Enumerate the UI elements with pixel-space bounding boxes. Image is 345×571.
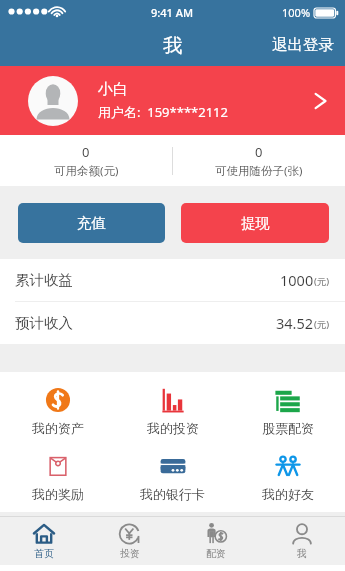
button[interactable]: 股票配资 bbox=[230, 386, 345, 436]
staticText: 我的资产 bbox=[32, 420, 84, 436]
button[interactable]: 预计收入 bbox=[0, 302, 345, 344]
staticText: 配资 bbox=[206, 547, 226, 560]
staticText: 我 bbox=[297, 547, 307, 560]
staticText: 股票配资 bbox=[262, 420, 314, 436]
button[interactable]: 累计收益 bbox=[0, 259, 345, 301]
button[interactable]: 我的资产 bbox=[0, 386, 115, 436]
staticText: 预计收入 bbox=[15, 314, 73, 332]
button[interactable]: 小白 bbox=[0, 66, 345, 135]
staticText: 我的银行卡 bbox=[140, 486, 205, 502]
staticText: 用户名: 159****2112 bbox=[98, 103, 228, 121]
staticText: 首页 bbox=[34, 547, 54, 560]
staticText: 小白 bbox=[98, 80, 128, 99]
button[interactable]: 提现 bbox=[181, 203, 329, 243]
staticText: 我的好友 bbox=[262, 486, 314, 502]
staticText: (元) bbox=[314, 275, 330, 288]
other: Account details bbox=[309, 90, 331, 112]
button[interactable]: 退出登录 bbox=[261, 27, 345, 63]
staticText: 提现 bbox=[241, 214, 270, 232]
staticText: 投资 bbox=[120, 547, 140, 560]
button[interactable]: 我的好友 bbox=[230, 452, 345, 502]
staticText: 0 bbox=[82, 143, 90, 161]
staticText: 可用余额(元) bbox=[54, 163, 119, 179]
staticText: 充值 bbox=[77, 214, 106, 232]
button[interactable]: 我的银行卡 bbox=[115, 452, 230, 502]
staticText: 100% bbox=[282, 5, 311, 20]
staticText: 累计收益 bbox=[15, 271, 73, 289]
staticText: 1000 bbox=[280, 270, 314, 290]
staticText: 9:41 AM bbox=[151, 5, 194, 20]
staticText: 我 bbox=[163, 33, 183, 58]
button[interactable]: 我 bbox=[259, 517, 345, 565]
staticText: 退出登录 bbox=[272, 35, 334, 55]
button[interactable]: 配资 bbox=[173, 517, 259, 565]
staticText: 0 bbox=[255, 143, 263, 161]
staticText: 我的奖励 bbox=[32, 486, 84, 502]
button[interactable]: 0 bbox=[0, 135, 172, 186]
button[interactable]: 充值 bbox=[18, 203, 165, 243]
button[interactable]: 0 bbox=[173, 135, 345, 186]
button[interactable]: 首页 bbox=[0, 517, 87, 565]
button[interactable]: 我的奖励 bbox=[0, 452, 115, 502]
staticText: (元) bbox=[314, 318, 330, 331]
button[interactable]: 我的投资 bbox=[115, 386, 230, 436]
staticText: 可使用随份子(张) bbox=[215, 163, 303, 179]
button[interactable]: 投资 bbox=[87, 517, 173, 565]
staticText: 34.52 bbox=[276, 313, 314, 333]
staticText: 我的投资 bbox=[147, 420, 199, 436]
